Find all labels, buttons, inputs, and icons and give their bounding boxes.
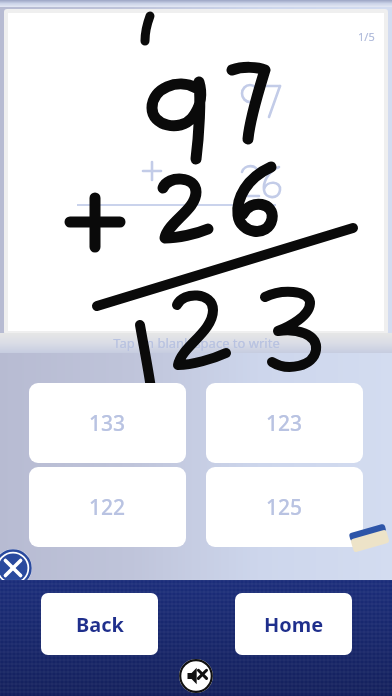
button[interactable]: 133	[29, 383, 186, 463]
button[interactable]: 125	[206, 467, 363, 547]
button[interactable]: Close	[0, 549, 32, 587]
staticText: 133	[89, 409, 126, 438]
staticText: 123	[266, 409, 303, 438]
button[interactable]	[8, 13, 384, 331]
button[interactable]: 123	[206, 383, 363, 463]
staticText: Tap on blank space to write	[113, 334, 280, 352]
staticText: Home	[264, 611, 324, 638]
staticText: Back	[76, 611, 124, 638]
button[interactable]: Back	[41, 593, 158, 655]
button[interactable]: Eraser	[348, 524, 392, 558]
button[interactable]: Home	[235, 593, 352, 655]
staticText: 1/5	[358, 29, 375, 44]
button[interactable]: 122	[29, 467, 186, 547]
staticText: 125	[266, 493, 303, 522]
staticText: 122	[89, 493, 126, 522]
button[interactable]: Mute	[179, 659, 213, 693]
